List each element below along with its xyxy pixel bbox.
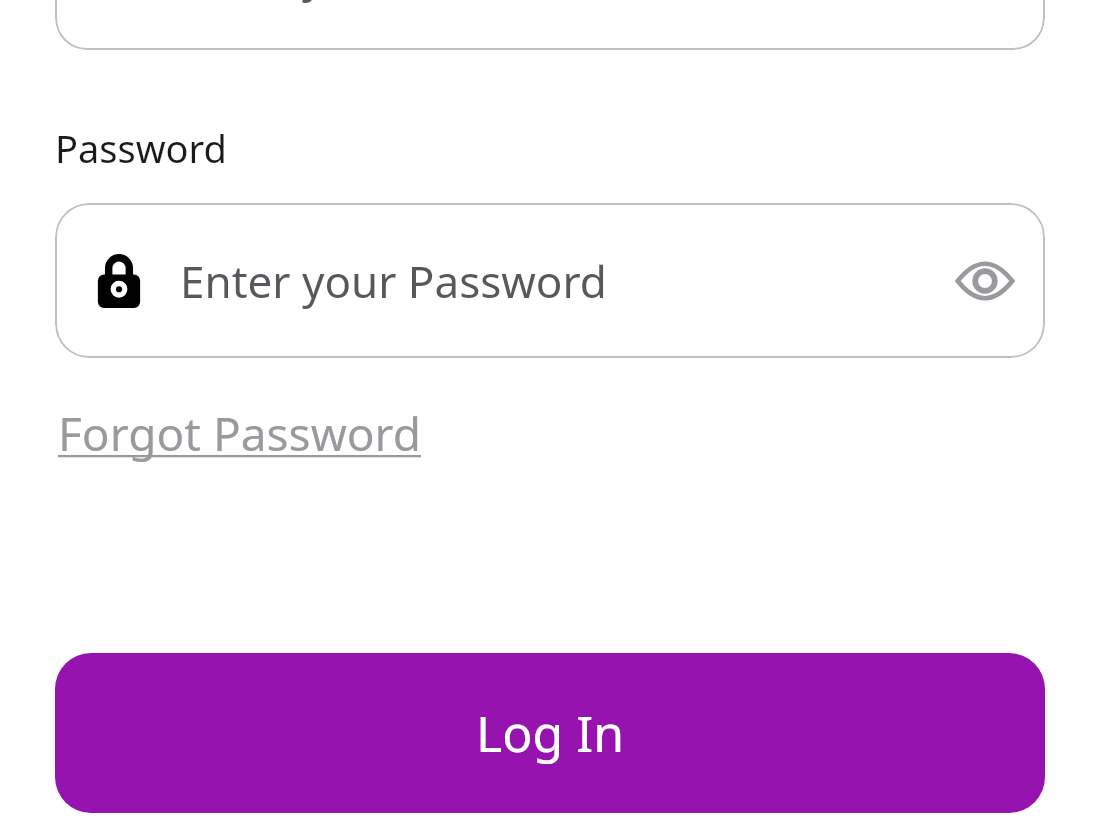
- staticText: Enter your Email: [180, 0, 521, 5]
- staticText: Log In: [476, 699, 625, 767]
- button[interactable]: Log In: [55, 653, 1045, 813]
- staticText: Enter your Password: [180, 251, 607, 311]
- button[interactable]: Enter your Email: [55, 0, 1045, 50]
- staticText: Forgot Password: [58, 402, 421, 465]
- button[interactable]: Enter your Password: [55, 203, 1045, 358]
- staticText: Password: [55, 122, 227, 174]
- button[interactable]: Show password: [947, 243, 1023, 319]
- button[interactable]: Forgot Password: [56, 398, 423, 469]
